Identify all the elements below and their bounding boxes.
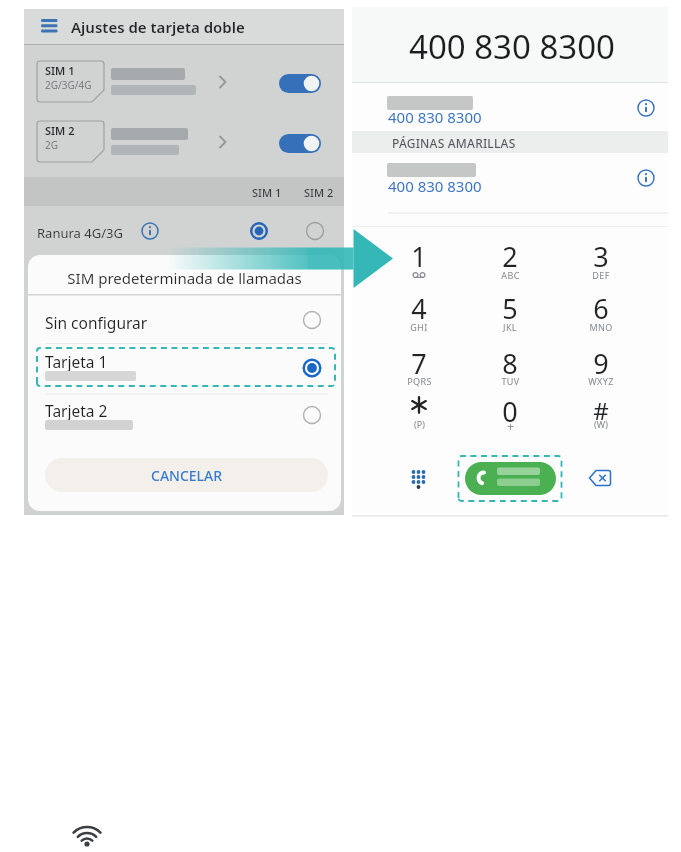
button[interactable]	[582, 458, 620, 498]
staticText: 2	[502, 238, 518, 272]
button[interactable]	[30, 300, 339, 343]
button[interactable]	[352, 83, 668, 131]
staticText: +	[507, 418, 514, 432]
button[interactable]	[465, 462, 556, 495]
staticText: 400 830 8300	[388, 107, 482, 127]
staticText: Tarjeta 1	[45, 351, 108, 372]
staticText: SIM predeterminada de llamadas	[67, 268, 302, 288]
button[interactable]	[465, 338, 555, 388]
staticText: DEF	[592, 269, 610, 281]
staticText: JKL	[503, 321, 517, 333]
staticText: 5	[502, 290, 518, 324]
button[interactable]	[630, 93, 662, 125]
staticText: 0	[502, 393, 518, 427]
staticText: 3	[593, 238, 609, 272]
staticText: Ranura 4G/3G	[37, 224, 123, 242]
button[interactable]	[465, 231, 555, 281]
staticText: 1	[411, 238, 427, 272]
button[interactable]	[374, 231, 464, 281]
staticText: CANCELAR	[151, 466, 223, 485]
button[interactable]	[374, 390, 464, 440]
button[interactable]	[630, 162, 662, 194]
staticText: 400 830 8300	[409, 24, 615, 66]
staticText: GHI	[410, 321, 428, 333]
staticText: SIM 2	[304, 185, 334, 200]
staticText: 7	[411, 345, 427, 379]
staticText: 400 830 8300	[388, 176, 482, 196]
staticText: 4	[411, 290, 427, 324]
button[interactable]	[24, 112, 344, 172]
button[interactable]	[24, 52, 344, 112]
button[interactable]	[556, 390, 646, 440]
staticText: 2G	[45, 138, 58, 152]
staticText: 8	[502, 345, 518, 379]
button[interactable]	[465, 390, 555, 440]
staticText: TUV	[501, 375, 520, 387]
staticText: PÁGINAS AMARILLAS	[392, 135, 516, 151]
staticText: 6	[593, 290, 609, 324]
staticText: SIM 2	[45, 123, 75, 138]
staticText: WXYZ	[588, 375, 614, 387]
button[interactable]	[24, 210, 344, 252]
staticText: PQRS	[407, 375, 432, 387]
staticText: Tarjeta 2	[45, 400, 108, 421]
button[interactable]	[556, 338, 646, 388]
button[interactable]	[399, 458, 437, 498]
button[interactable]	[374, 283, 464, 333]
button[interactable]	[556, 231, 646, 281]
button[interactable]	[36, 15, 62, 39]
staticText: Ajustes de tarjeta doble	[71, 17, 245, 37]
staticText: Sin configurar	[45, 312, 148, 333]
staticText: SIM 1	[45, 63, 75, 78]
staticText: (P)	[414, 418, 425, 430]
button[interactable]	[352, 153, 668, 212]
staticText: 2G/3G/4G	[45, 78, 92, 92]
button[interactable]	[374, 338, 464, 388]
staticText: ABC	[501, 269, 520, 281]
button[interactable]	[556, 283, 646, 333]
staticText: 9	[593, 345, 609, 379]
button[interactable]	[30, 344, 339, 393]
button[interactable]	[465, 283, 555, 333]
button[interactable]	[30, 394, 339, 446]
staticText: MNO	[589, 321, 613, 333]
button[interactable]: CANCELAR	[45, 458, 328, 492]
staticText: (W)	[594, 418, 608, 430]
staticText: #	[593, 394, 609, 427]
staticText: SIM 1	[252, 185, 282, 200]
